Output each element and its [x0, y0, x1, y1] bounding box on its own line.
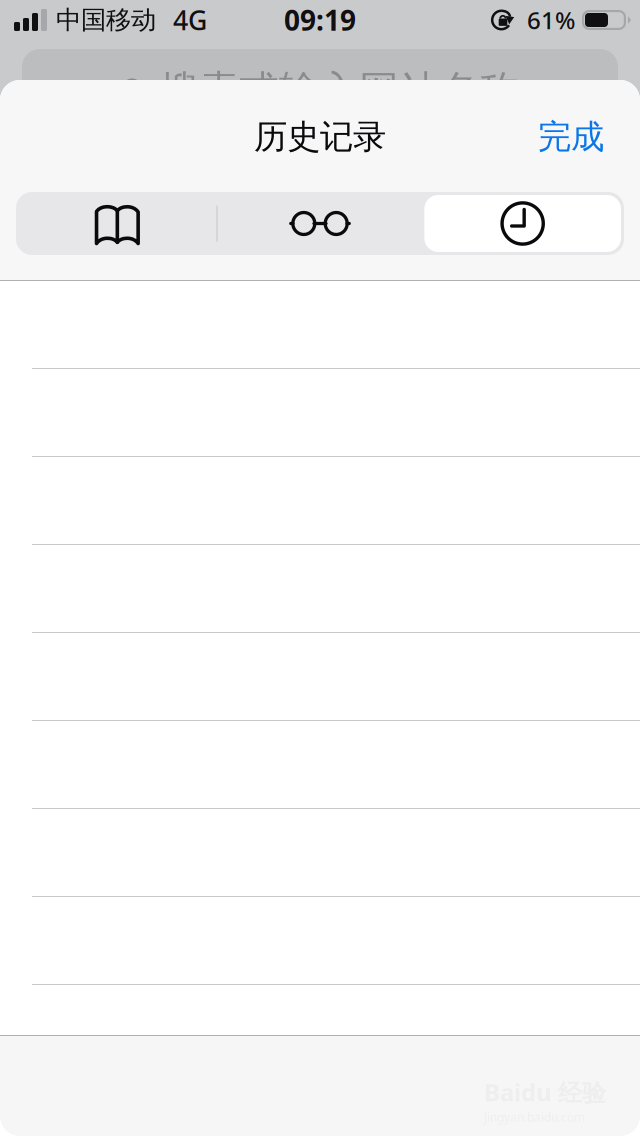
- staticText: 完成: [538, 116, 604, 157]
- button[interactable]: 历史记录: [421, 195, 624, 252]
- staticText: 09:19: [284, 1, 356, 39]
- button[interactable]: 阅读列表: [219, 192, 421, 255]
- staticText: 历史记录: [254, 116, 386, 157]
- staticText: 61%: [527, 4, 575, 36]
- staticText: 中国移动: [56, 4, 156, 35]
- button[interactable]: 书签: [16, 192, 219, 255]
- staticText: 搜索或输入网站名称: [159, 66, 519, 115]
- staticText: 4G: [173, 2, 207, 38]
- button[interactable]: 完成: [514, 104, 640, 169]
- staticText: Baidu 经验: [484, 1076, 606, 1108]
